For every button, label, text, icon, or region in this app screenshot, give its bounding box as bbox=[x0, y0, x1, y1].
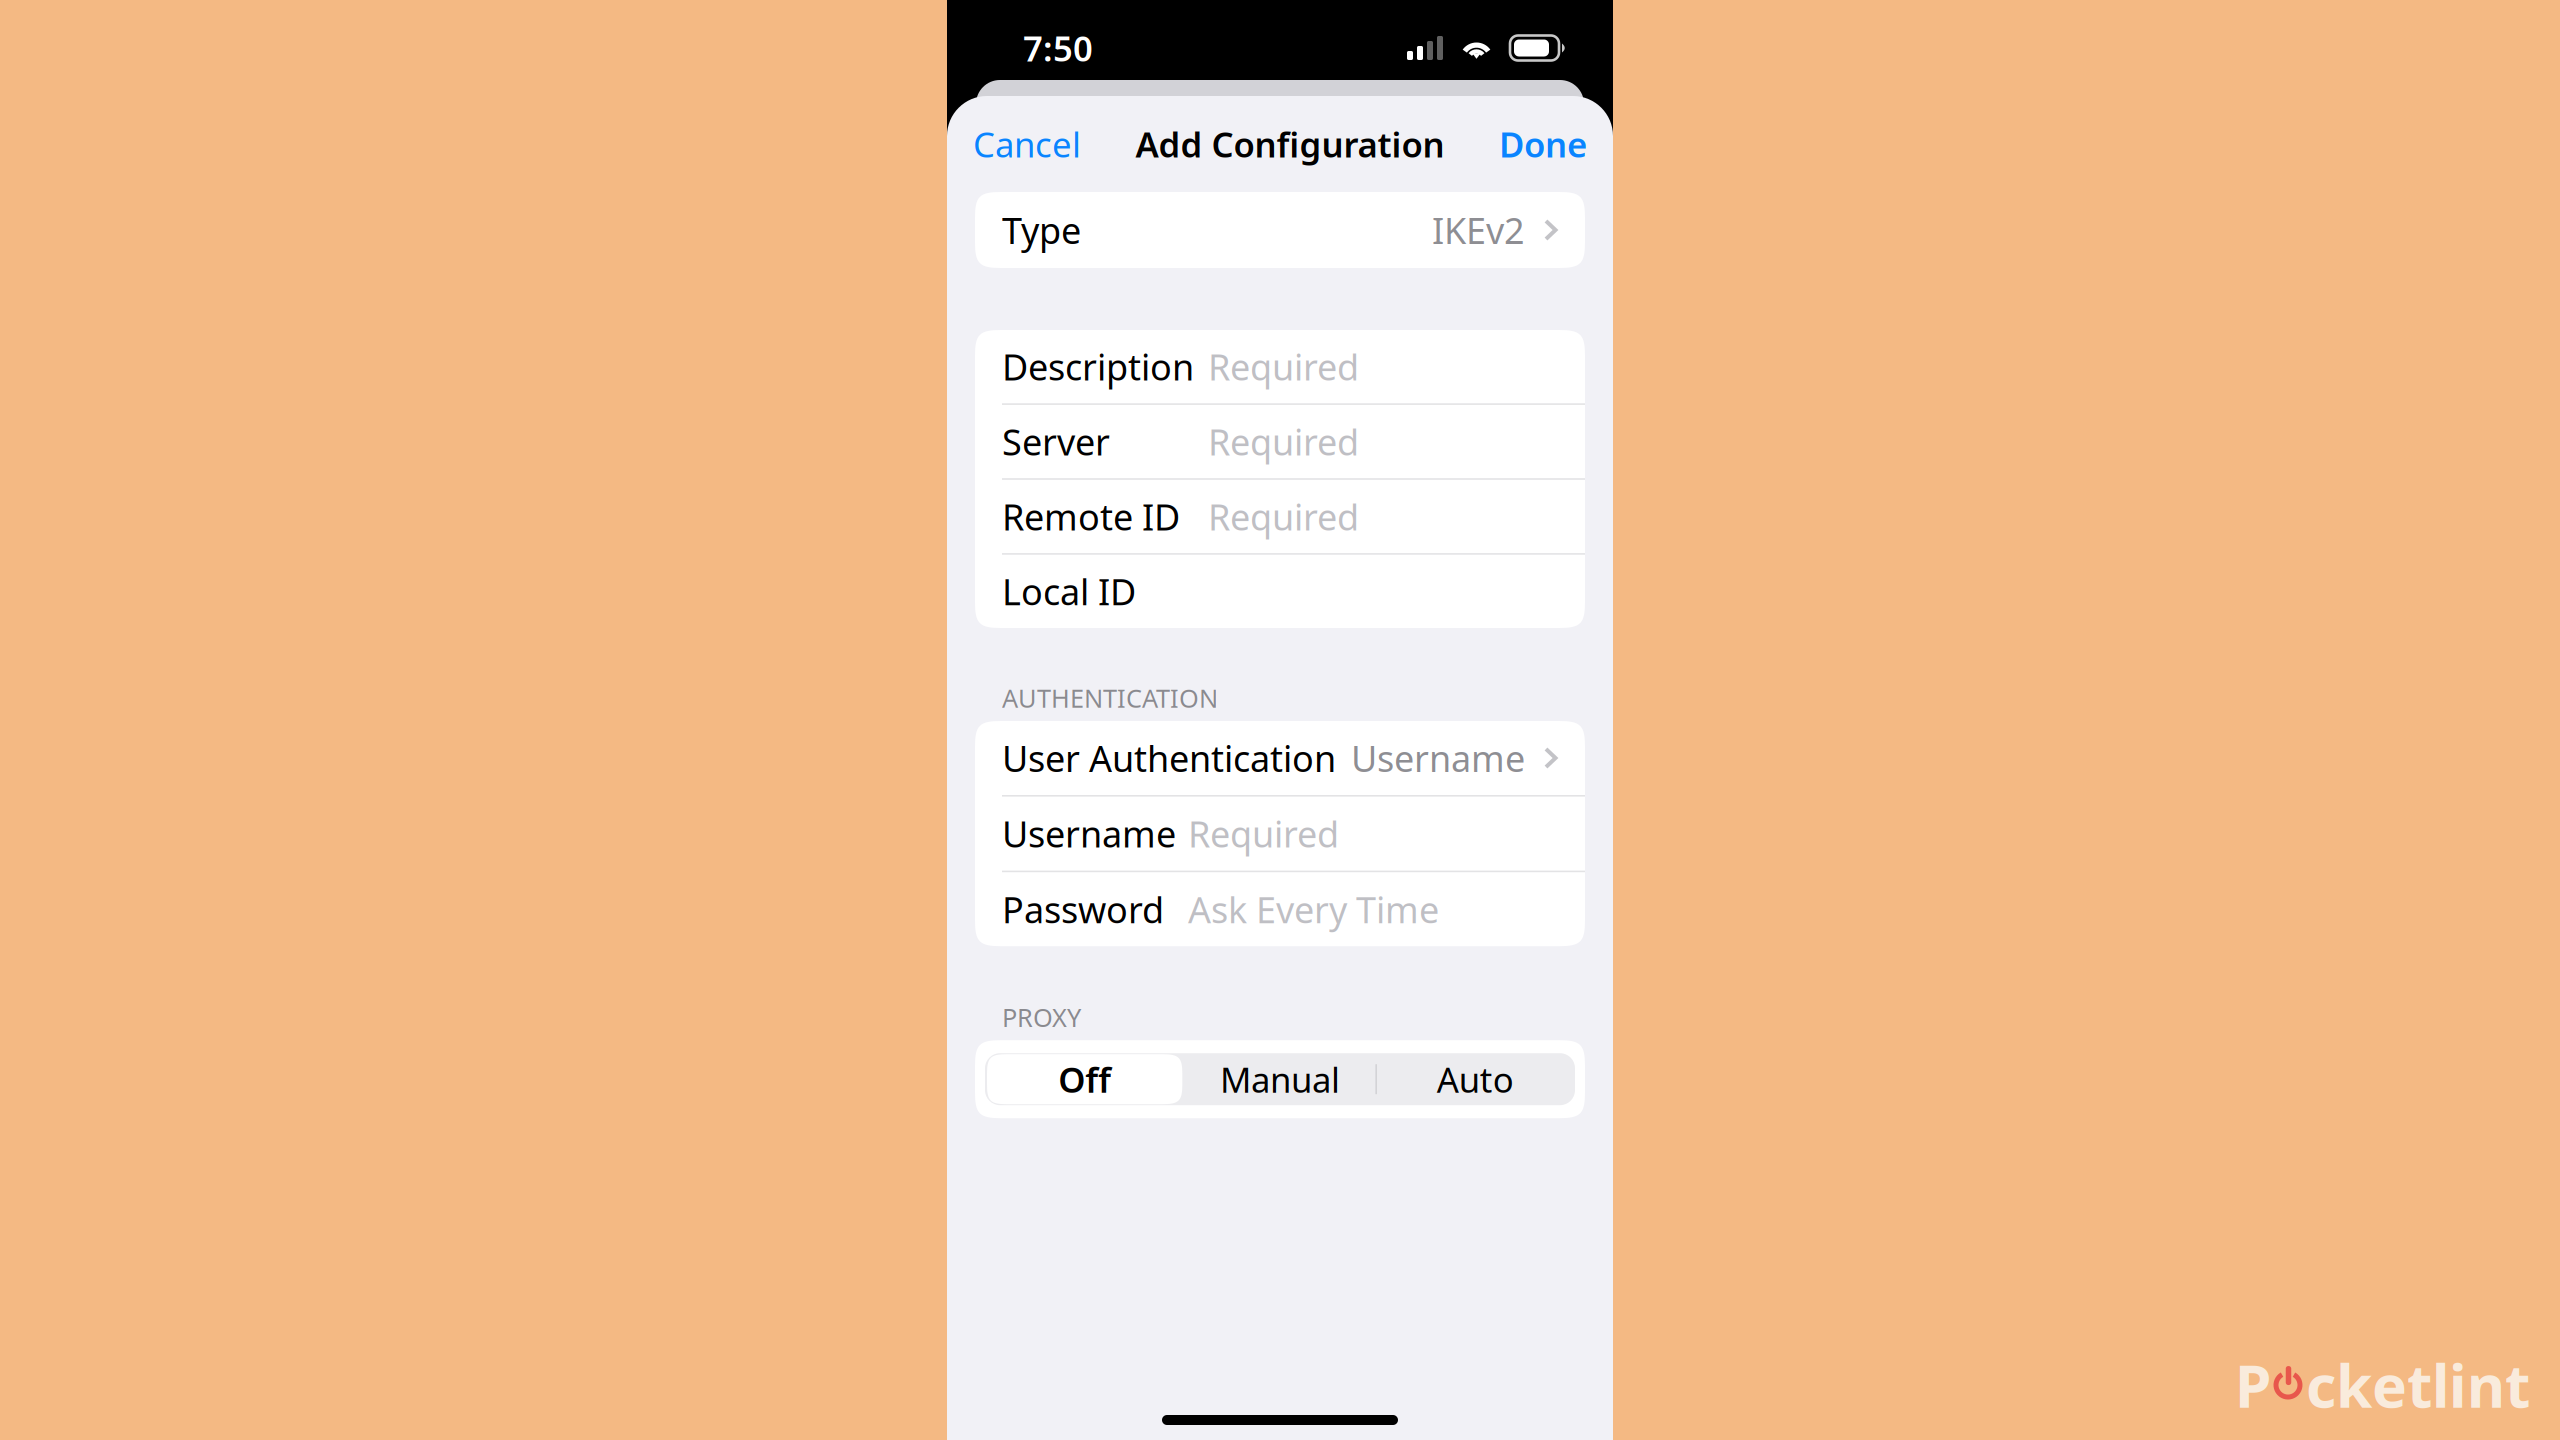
button[interactable]: Username, Required bbox=[975, 797, 1585, 871]
staticText: Server bbox=[1002, 418, 1110, 465]
button[interactable]: Server, Required bbox=[975, 405, 1585, 478]
staticText: Cancel bbox=[973, 121, 1081, 167]
staticText: Description bbox=[1002, 343, 1194, 390]
staticText: Required bbox=[1208, 492, 1359, 540]
button[interactable]: Cancel bbox=[947, 96, 1107, 192]
staticText: P bbox=[2235, 1346, 2271, 1424]
staticText: Required bbox=[1208, 418, 1359, 465]
staticText: User Authentication bbox=[1002, 734, 1336, 782]
staticText: Username bbox=[1351, 734, 1525, 782]
staticText: Required bbox=[1208, 343, 1359, 390]
button[interactable]: Type, IKEv2 bbox=[975, 192, 1585, 268]
staticText: Required bbox=[1188, 810, 1339, 857]
button[interactable]: Description, Required bbox=[975, 330, 1585, 403]
button[interactable]: Remote ID, Required bbox=[975, 480, 1585, 553]
staticText: Remote ID bbox=[1002, 492, 1180, 540]
staticText: 7:50 bbox=[1023, 25, 1093, 71]
staticText: Auto bbox=[1437, 1056, 1514, 1102]
staticText: Ask Every Time bbox=[1188, 885, 1439, 933]
staticText: Username bbox=[1002, 810, 1176, 857]
button[interactable]: User Authentication, Username bbox=[975, 721, 1585, 795]
button[interactable]: Manual bbox=[1182, 1054, 1378, 1104]
staticText: Type bbox=[1002, 206, 1081, 254]
staticText: cketlint bbox=[2306, 1346, 2530, 1424]
staticText: Local ID bbox=[1002, 567, 1136, 615]
staticText: Add Configuration bbox=[1135, 121, 1444, 167]
staticText: AUTHENTICATION bbox=[1002, 681, 1218, 715]
button[interactable]: Local ID bbox=[975, 555, 1585, 628]
staticText: Manual bbox=[1220, 1056, 1340, 1102]
button[interactable]: Auto bbox=[1378, 1054, 1573, 1104]
staticText: Off bbox=[1058, 1056, 1111, 1102]
button[interactable]: Done bbox=[1473, 96, 1613, 192]
staticText: Password bbox=[1002, 885, 1164, 933]
button[interactable]: Password, Ask Every Time bbox=[975, 872, 1585, 946]
staticText: IKEv2 bbox=[1432, 206, 1525, 254]
button[interactable]: Off bbox=[987, 1054, 1182, 1104]
staticText: PROXY bbox=[1002, 1000, 1081, 1034]
staticText: Done bbox=[1499, 121, 1587, 167]
